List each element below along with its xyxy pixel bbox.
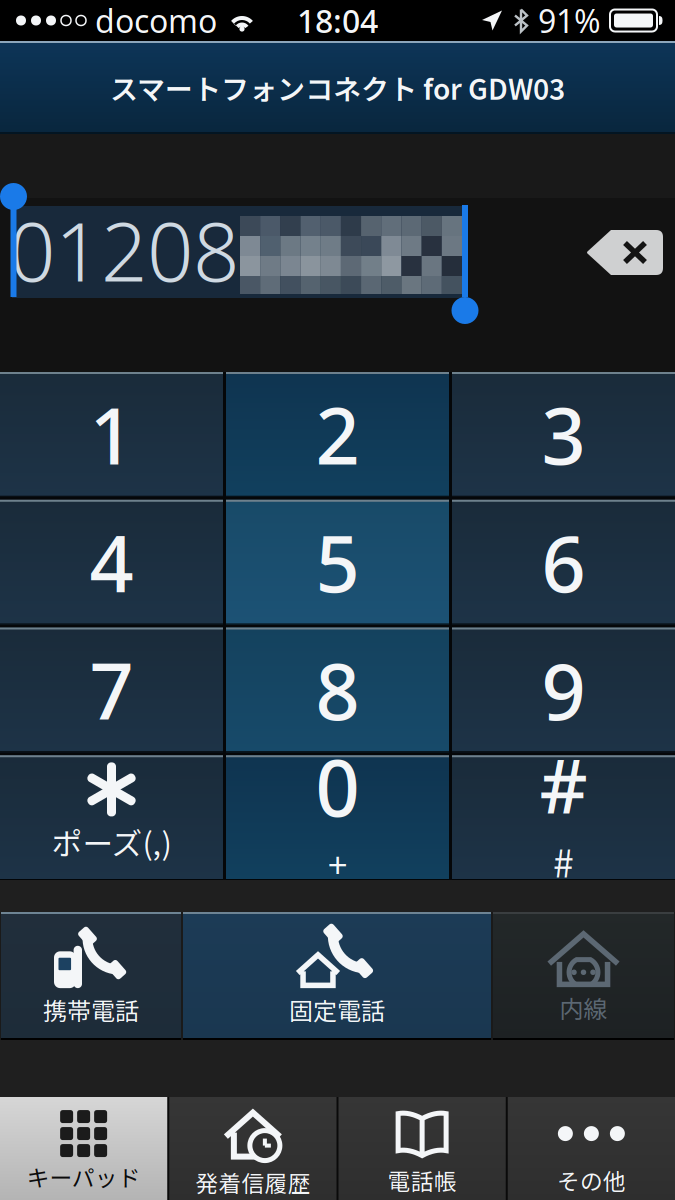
staticText: 1 <box>89 383 133 486</box>
button[interactable]: 内線 <box>493 912 674 1040</box>
staticText: 電話帳 <box>388 1164 457 1196</box>
staticText: # <box>539 735 587 834</box>
staticText: 内線 <box>559 990 607 1025</box>
staticText: 9 <box>541 638 585 741</box>
staticText: スマートフォンコネクト for GDW03 <box>110 67 565 108</box>
button[interactable]: 8 <box>226 627 449 752</box>
staticText: # <box>553 834 574 888</box>
button[interactable]: 電話帳 <box>338 1097 506 1200</box>
button[interactable]: 3 <box>452 372 675 497</box>
staticText: 発着信履歴 <box>195 1166 310 1198</box>
button[interactable]: 9 <box>452 627 675 752</box>
staticText: 18:04 <box>297 0 378 42</box>
staticText: 5 <box>315 511 359 613</box>
staticText: 4 <box>89 511 133 613</box>
button[interactable]: キーパッド <box>0 1097 167 1200</box>
staticText: 7 <box>89 638 133 741</box>
staticText: 3 <box>541 383 585 486</box>
button[interactable]: # <box>452 755 675 880</box>
button[interactable]: 発着信履歴 <box>169 1097 336 1200</box>
staticText: 91% <box>538 0 601 42</box>
staticText: docomo <box>95 0 217 42</box>
staticText: 0 <box>315 735 359 838</box>
button[interactable]: 5 <box>226 500 449 625</box>
button[interactable]: 1 <box>0 372 223 497</box>
button[interactable]: Delete <box>586 229 664 276</box>
staticText: + <box>328 838 347 888</box>
staticText: 8 <box>315 638 359 741</box>
staticText: 2 <box>315 383 359 486</box>
staticText: 6 <box>541 511 585 613</box>
staticText: キーパッド <box>27 1160 141 1193</box>
staticText: 固定電話 <box>289 992 385 1027</box>
staticText: 01208 <box>9 196 239 304</box>
button[interactable]: 携帯電話 <box>1 912 181 1040</box>
button[interactable]: 2 <box>226 372 449 497</box>
button[interactable]: 0 <box>226 755 449 880</box>
button[interactable]: ポーズ(,) <box>0 755 223 880</box>
staticText: 携帯電話 <box>43 992 139 1027</box>
button[interactable]: その他 <box>508 1097 675 1200</box>
button[interactable]: 7 <box>0 627 223 752</box>
button[interactable]: 6 <box>452 500 675 625</box>
staticText: その他 <box>557 1164 626 1196</box>
staticText: ポーズ(,) <box>51 819 171 864</box>
button[interactable]: 4 <box>0 500 223 625</box>
button[interactable]: 固定電話 <box>183 912 491 1040</box>
